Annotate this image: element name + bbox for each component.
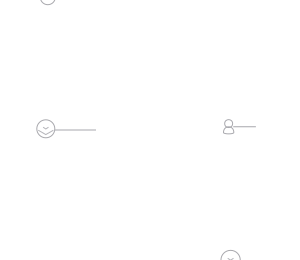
button[interactable]: Contact [37, 120, 96, 138]
button[interactable]: Contact [223, 120, 256, 134]
button[interactable]: Contact [221, 250, 240, 260]
button[interactable]: Contact [40, 0, 55, 5]
